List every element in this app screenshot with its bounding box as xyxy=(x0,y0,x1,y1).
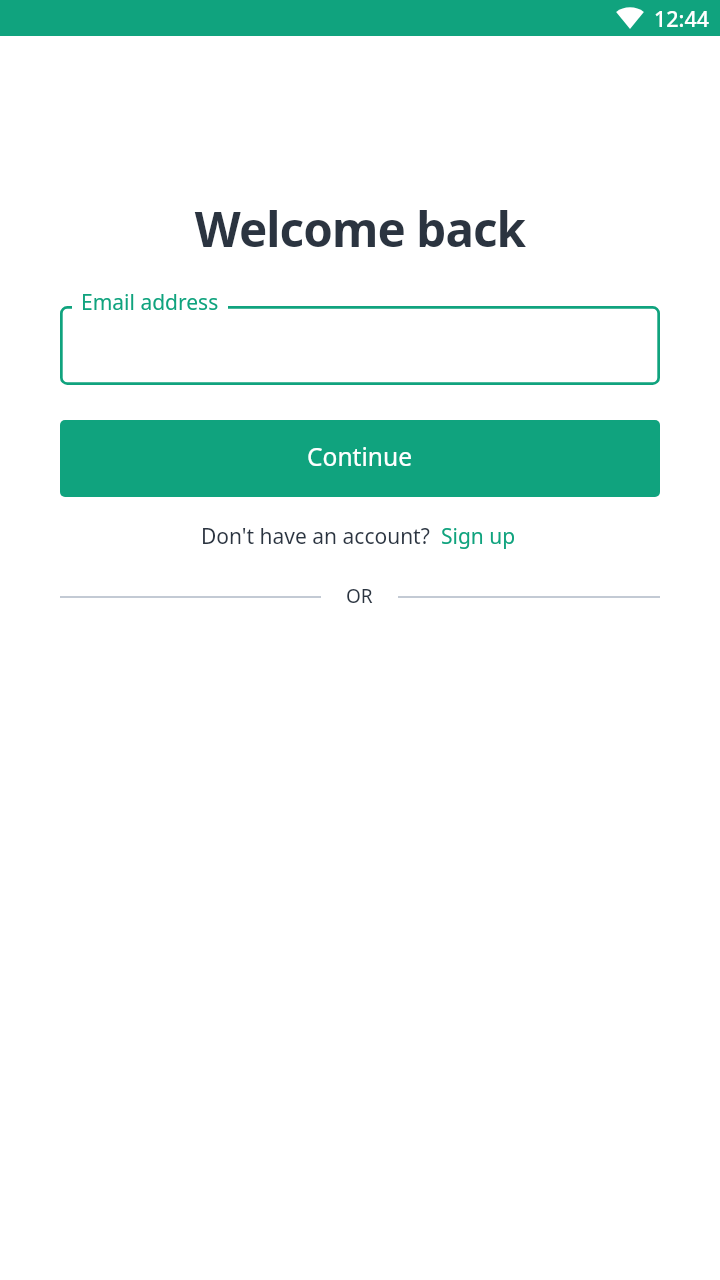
staticText: Email address xyxy=(81,288,219,317)
staticText: Welcome back xyxy=(0,196,720,261)
button[interactable]: Sign up xyxy=(430,516,527,557)
other: Wi-Fi signal xyxy=(616,7,644,29)
staticText: OR xyxy=(346,583,373,609)
staticText: Continue xyxy=(307,440,413,474)
staticText: Sign up xyxy=(441,522,516,551)
button[interactable]: Continue xyxy=(60,420,660,497)
button[interactable]: Email address input xyxy=(60,306,660,385)
staticText: 12:44 xyxy=(654,4,710,33)
staticText: Don't have an account? xyxy=(201,522,430,551)
